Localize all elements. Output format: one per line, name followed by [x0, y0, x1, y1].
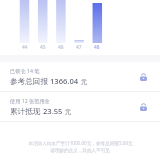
staticText: 元 — [63, 107, 72, 116]
staticText: 45 — [40, 44, 46, 51]
staticText: 47 — [76, 44, 82, 51]
staticText: 44 — [22, 44, 28, 51]
staticText: 请理解的含义，其他人不可见 — [50, 148, 110, 154]
staticText: 累计抵现 — [10, 106, 43, 116]
staticText: 参考总回报 — [10, 76, 50, 86]
button[interactable]: 抵现详情 — [136, 100, 150, 114]
staticText: 本活动人均水产至计1000.00元，参考总回报5.00元 — [28, 140, 133, 146]
button[interactable]: 锁仓详情 — [136, 70, 150, 84]
staticText: 1366.04 — [50, 76, 79, 86]
staticText: 46 — [58, 44, 64, 51]
button[interactable]: 已锁仓 14 笔 — [0, 62, 160, 91]
staticText: 使用 12 张抵用金 — [10, 97, 50, 104]
button[interactable]: 使用 12 张抵用金 — [0, 92, 160, 121]
staticText: 元 — [79, 77, 88, 86]
staticText: 23.55 — [43, 106, 63, 116]
staticText: 48 — [94, 44, 100, 51]
staticText: 已锁仓 14 笔 — [10, 67, 40, 74]
